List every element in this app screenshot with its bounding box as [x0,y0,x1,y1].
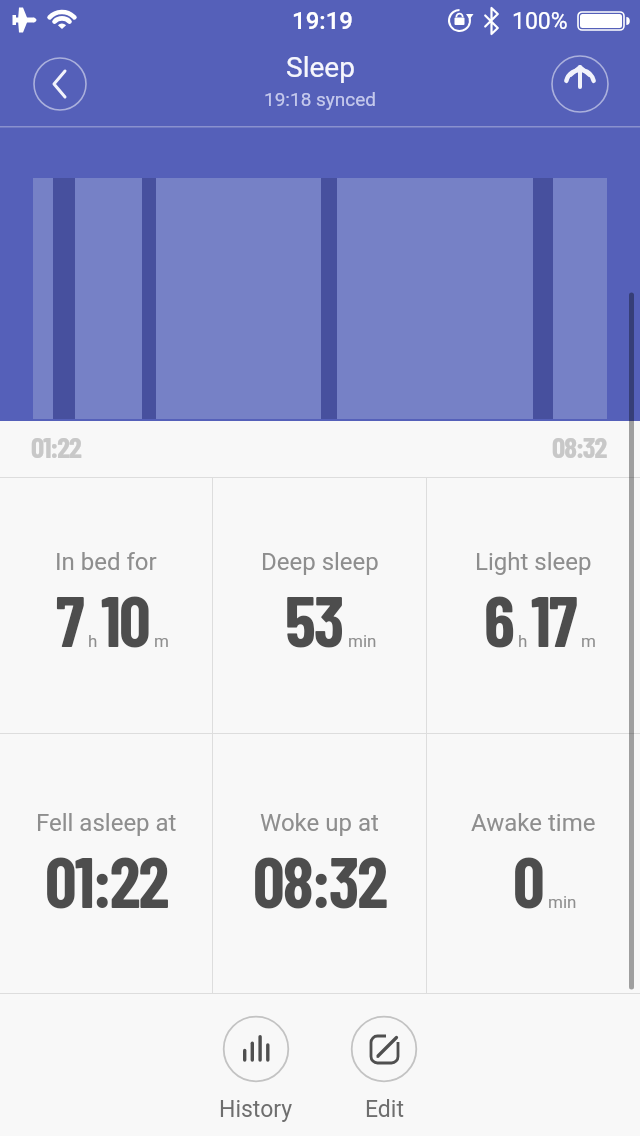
button[interactable]: In bed for [0,478,212,733]
button[interactable]: Awake time [427,734,640,993]
staticText: Edit [365,1096,404,1123]
button[interactable] [34,58,86,110]
staticText: Deep sleep [261,548,379,576]
staticText: 17 [531,577,576,661]
button[interactable]: Edit [345,1016,423,1123]
staticText: 01:22 [31,429,81,464]
staticText: h [518,631,528,651]
staticText: Light sleep [475,548,592,576]
staticText: 0 [513,838,543,922]
button[interactable]: Woke up at [213,734,426,993]
staticText: Sleep [286,51,355,84]
staticText: 01:22 [45,838,168,922]
staticText: History [219,1096,293,1123]
button[interactable]: Light sleep [427,478,640,733]
staticText: 100% [512,8,568,35]
staticText: In bed for [55,548,157,576]
staticText: 08:32 [253,838,386,922]
staticText: Awake time [471,809,596,837]
staticText: 10 [101,577,149,661]
staticText: min [548,892,577,912]
staticText: 08:32 [552,429,607,464]
staticText: 19:18 synced [264,88,377,110]
staticText: 53 [285,577,343,661]
staticText: Woke up at [260,809,379,837]
button[interactable]: Deep sleep [213,478,426,733]
button[interactable]: History [214,1016,298,1123]
staticText: 6 [484,577,513,661]
staticText: 19:19 [292,7,353,35]
staticText: m [154,631,169,651]
staticText: 7 [56,577,83,661]
staticText: m [581,631,596,651]
staticText: min [348,631,377,651]
staticText: h [88,631,98,651]
staticText: Fell asleep at [36,809,177,837]
button[interactable] [552,56,608,112]
button[interactable]: Fell asleep at [0,734,212,993]
